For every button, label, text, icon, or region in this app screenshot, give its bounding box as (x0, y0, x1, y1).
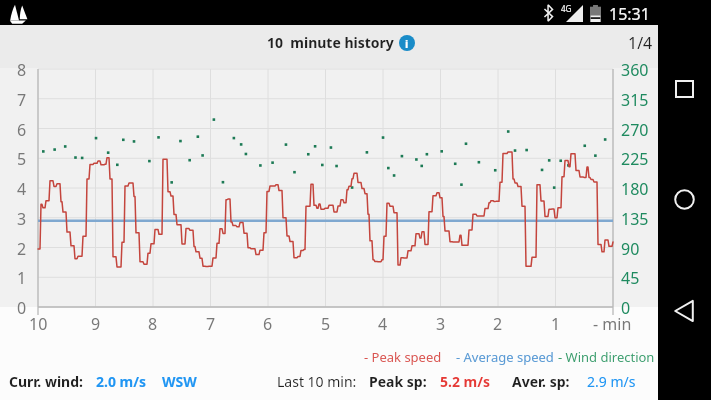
staticText: 0 (17, 297, 27, 319)
button[interactable]: Home (661, 176, 707, 222)
staticText: 270 (621, 119, 649, 141)
staticText: - Wind direction (558, 348, 655, 366)
staticText: Last 10 min: (277, 372, 357, 391)
staticText: 10 minute history (267, 33, 394, 52)
staticText: 3 (436, 313, 446, 335)
staticText: 4G (561, 3, 572, 14)
staticText: 5 (321, 313, 331, 335)
staticText: i (405, 36, 409, 51)
staticText: - Peak speed (364, 348, 442, 366)
staticText: 315 (621, 89, 649, 111)
staticText: 225 (621, 148, 649, 170)
staticText: 4 (17, 178, 27, 200)
staticText: 6 (263, 313, 273, 335)
staticText: 45 (621, 267, 640, 289)
staticText: 8 (17, 59, 27, 81)
staticText: 2.0 m/s (96, 372, 147, 391)
staticText: 9 (91, 313, 101, 335)
staticText: 360 (621, 59, 649, 81)
staticText: Aver. sp: (512, 372, 570, 391)
staticText: 2 (17, 238, 27, 260)
staticText: 5 (17, 148, 27, 170)
staticText: 4 (378, 313, 388, 335)
staticText: 7 (17, 89, 27, 111)
staticText: 135 (621, 208, 649, 230)
staticText: 5.2 m/s (440, 372, 491, 391)
staticText: WSW (162, 372, 197, 391)
staticText: 7 (206, 313, 216, 335)
staticText: 180 (621, 178, 649, 200)
staticText: Peak sp: (369, 372, 427, 391)
button[interactable]: 10 minute history (267, 33, 415, 52)
staticText: 1 (551, 313, 561, 335)
staticText: 2.9 m/s (587, 372, 636, 391)
staticText: - min (593, 313, 632, 335)
staticText: 3 (17, 208, 27, 230)
staticText: - Average speed (456, 348, 554, 366)
staticText: 2 (493, 313, 503, 335)
staticText: 10 (29, 313, 48, 335)
staticText: 1/4 (628, 32, 653, 54)
staticText: 6 (17, 119, 27, 141)
staticText: 8 (148, 313, 158, 335)
staticText: 0 (621, 297, 631, 319)
button[interactable]: Back (661, 288, 707, 334)
staticText: Curr. wind: (9, 372, 83, 391)
staticText: 1 (17, 267, 27, 289)
staticText: 15:31 (609, 3, 650, 25)
staticText: 90 (621, 238, 640, 260)
button[interactable]: Recent apps (661, 66, 707, 112)
